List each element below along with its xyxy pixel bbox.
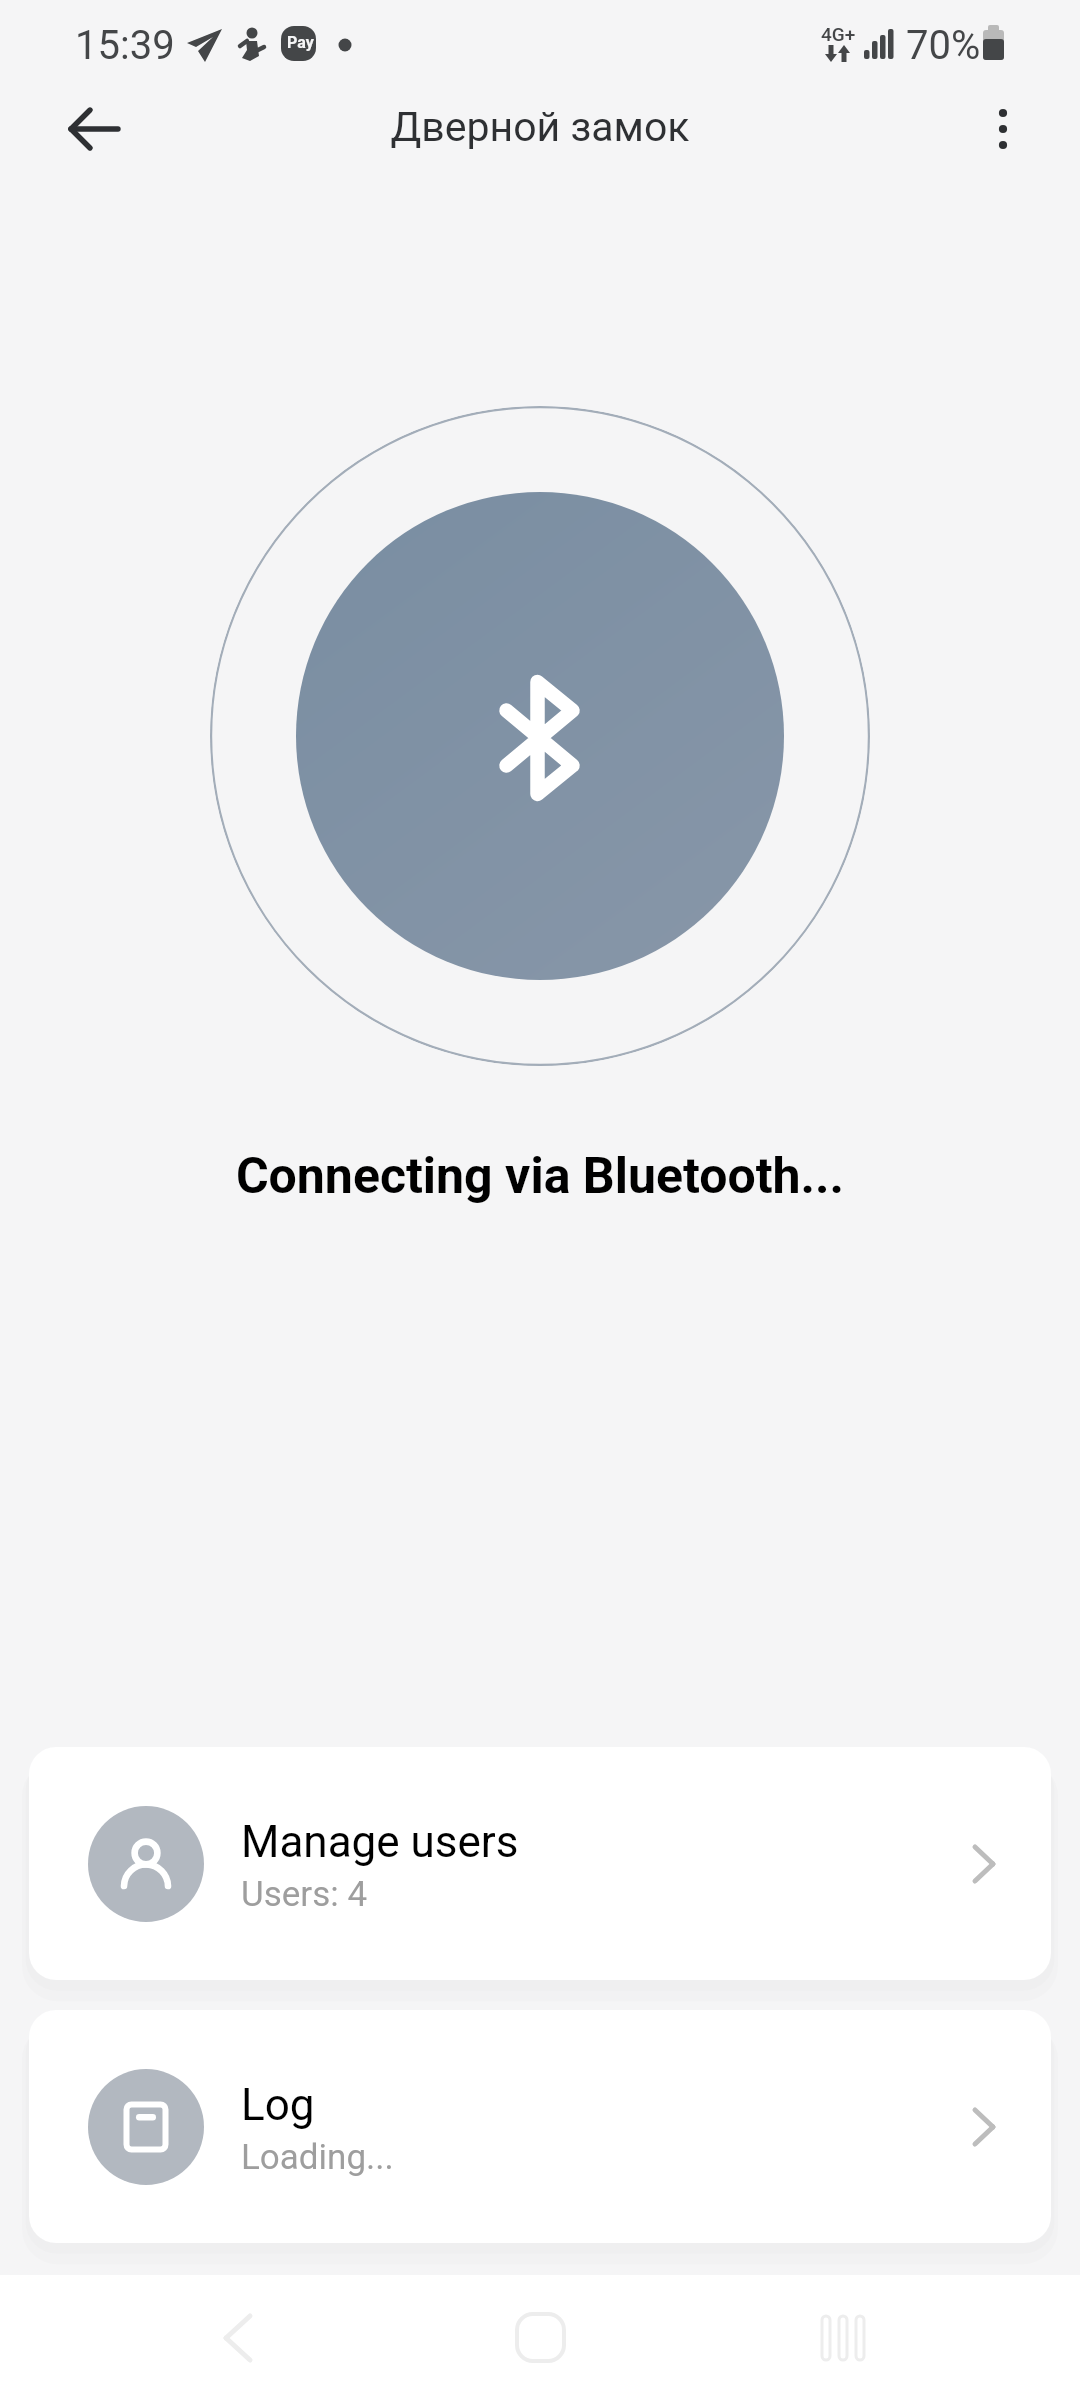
button[interactable]: More options	[963, 89, 1043, 169]
button[interactable]: Manage users	[29, 1747, 1051, 1980]
staticText: Manage users	[241, 1816, 519, 1868]
staticText: Log	[241, 2079, 315, 2131]
button[interactable]: Back	[55, 89, 135, 169]
button[interactable]: Recent apps	[783, 2275, 903, 2400]
staticText: Дверной замок	[0, 103, 1080, 151]
staticText: Loading...	[241, 2137, 394, 2178]
button[interactable]: Log	[29, 2010, 1051, 2243]
button[interactable]: Bluetooth connection status	[210, 406, 870, 1066]
button[interactable]: Home	[480, 2275, 600, 2400]
staticText: 15:39	[75, 22, 175, 69]
staticText: 4G+	[821, 23, 856, 45]
staticText: 70%	[906, 22, 981, 69]
staticText: Connecting via Bluetooth...	[0, 1147, 1080, 1206]
staticText: Pay	[287, 33, 314, 52]
staticText: Users: 4	[241, 1874, 368, 1915]
